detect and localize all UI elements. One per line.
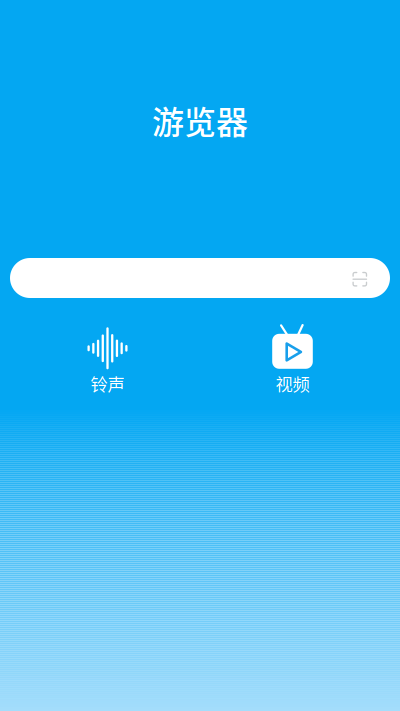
button[interactable]: Search or enter address xyxy=(10,258,390,298)
staticText: 铃声 xyxy=(90,371,124,396)
staticText: 游览器 xyxy=(152,97,248,143)
button[interactable]: 视频 xyxy=(232,325,352,396)
button[interactable]: 铃声 xyxy=(47,325,167,396)
staticText: 视频 xyxy=(275,371,309,396)
